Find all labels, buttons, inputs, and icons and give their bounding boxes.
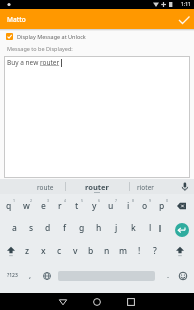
- staticText: l: [149, 222, 152, 234]
- staticText: f: [63, 222, 67, 234]
- button[interactable]: [175, 223, 189, 237]
- staticText: Display Message at Unlock: [17, 33, 86, 40]
- staticText: route: [37, 183, 54, 192]
- staticText: 9: [149, 198, 152, 203]
- staticText: o: [142, 200, 148, 212]
- staticText: d: [45, 222, 51, 234]
- staticText: 7: [115, 198, 118, 203]
- staticText: m: [119, 245, 128, 257]
- staticText: a: [12, 222, 17, 234]
- staticText: ,: [29, 270, 32, 280]
- staticText: !: [138, 245, 141, 257]
- button[interactable]: Buy a new router: [4, 56, 190, 178]
- staticText: c: [57, 245, 62, 257]
- staticText: y: [92, 200, 97, 212]
- button[interactable]: [58, 297, 68, 307]
- staticText: 1:11: [181, 1, 191, 8]
- staticText: q: [6, 200, 12, 212]
- staticText: t: [75, 200, 79, 212]
- staticText: router: [85, 182, 109, 192]
- button[interactable]: Matto: [0, 9, 194, 29]
- staticText: rioter: [137, 183, 154, 192]
- staticText: x: [41, 245, 46, 257]
- staticText: ?: [153, 245, 157, 257]
- staticText: b: [88, 245, 94, 257]
- staticText: Buy a new router: [7, 58, 60, 67]
- staticText: 3: [47, 198, 50, 203]
- staticText: 8: [132, 198, 135, 203]
- staticText: Message to be Displayed:: [7, 45, 73, 52]
- staticText: z: [25, 245, 30, 257]
- staticText: j: [115, 222, 118, 234]
- button[interactable]: [126, 297, 136, 307]
- button[interactable]: Display Message at Unlock: [6, 33, 86, 40]
- staticText: Matto: [7, 15, 26, 24]
- staticText: g: [79, 222, 85, 234]
- staticText: 1: [13, 198, 16, 203]
- staticText: v: [73, 245, 78, 257]
- staticText: r: [58, 200, 62, 212]
- staticText: 0: [166, 198, 169, 203]
- button[interactable]: [176, 10, 194, 28]
- staticText: h: [96, 222, 102, 234]
- staticText: k: [131, 222, 136, 234]
- staticText: 2: [30, 198, 33, 203]
- staticText: .: [167, 270, 170, 280]
- staticText: w: [23, 200, 30, 212]
- staticText: 6: [98, 198, 101, 203]
- staticText: e: [41, 200, 46, 212]
- staticText: p: [159, 200, 165, 212]
- staticText: u: [108, 200, 114, 212]
- staticText: s: [29, 222, 34, 234]
- staticText: ?123: [7, 272, 18, 279]
- button[interactable]: [92, 297, 102, 307]
- staticText: 5: [81, 198, 84, 203]
- staticText: 4: [64, 198, 67, 203]
- staticText: n: [104, 245, 110, 257]
- staticText: i: [127, 200, 130, 212]
